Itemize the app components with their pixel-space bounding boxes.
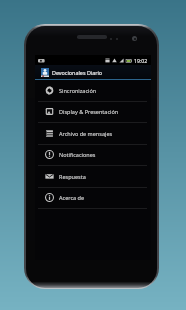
staticText: Sincronización [59, 87, 97, 94]
button[interactable]: Display & Presentación [35, 101, 151, 123]
button[interactable]: Acerca de [35, 187, 151, 209]
staticText: 19:02 [134, 57, 148, 64]
button[interactable]: Respuesta [35, 166, 151, 188]
staticText: Acerca de [59, 194, 85, 201]
staticText: Respuesta [59, 173, 86, 180]
button[interactable]: Devocionales Diario [35, 65, 151, 79]
staticText: Archivo de mensajes [59, 130, 113, 137]
button[interactable]: Sincronización [35, 80, 151, 102]
staticText: Display & Presentación [59, 108, 119, 115]
button[interactable]: Archivo de mensajes [35, 123, 151, 145]
staticText: Notificaciones [59, 151, 96, 158]
staticText: Devocionales Diario [52, 69, 103, 76]
button[interactable]: Notificaciones [35, 144, 151, 166]
